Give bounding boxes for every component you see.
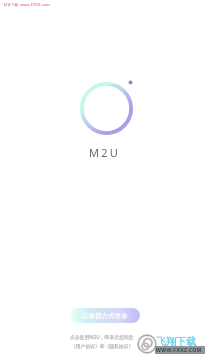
staticText: WWW.FXXZ.COM xyxy=(156,347,202,354)
staticText: 《用户协议》和《隐私协议》 xyxy=(71,343,134,349)
staticText: 点击使用M2U，即表示您同意 xyxy=(70,334,134,341)
staticText: 软件下载 xyxy=(4,3,19,8)
staticText: 以微信方式登录 xyxy=(82,312,128,320)
staticText: M2U xyxy=(89,145,120,160)
button[interactable]: 以微信方式登录 xyxy=(70,308,140,323)
staticText: 飞翔下载 xyxy=(156,335,196,348)
staticText: www.FXXZ.com xyxy=(20,2,50,8)
